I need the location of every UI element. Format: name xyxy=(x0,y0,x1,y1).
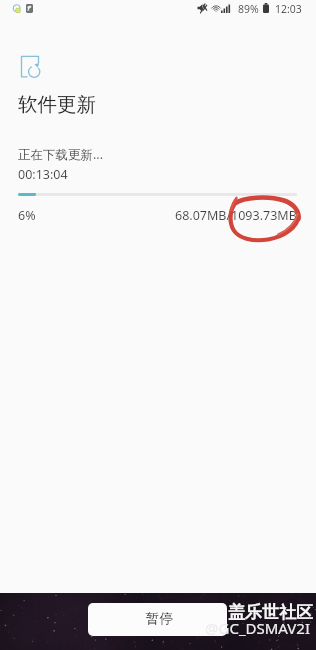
staticText: 12:03 xyxy=(275,2,302,16)
other: Software update xyxy=(20,53,44,80)
staticText: 盖乐世社区 xyxy=(228,602,313,623)
staticText: 68.07MB/1093.73MB xyxy=(175,207,297,224)
other: QQ notification xyxy=(12,4,21,13)
staticText: 00:13:04 xyxy=(18,166,68,183)
button[interactable]: 暂停 xyxy=(88,603,227,636)
staticText: 6% xyxy=(18,207,36,224)
staticText: @GC_DSMAV2I xyxy=(205,618,310,638)
staticText: 89% xyxy=(238,2,259,16)
other: App notification xyxy=(26,4,33,13)
staticText: 正在下载更新... xyxy=(18,146,104,163)
staticText: 软件更新 xyxy=(18,92,96,117)
staticText: 暂停 xyxy=(146,610,173,627)
